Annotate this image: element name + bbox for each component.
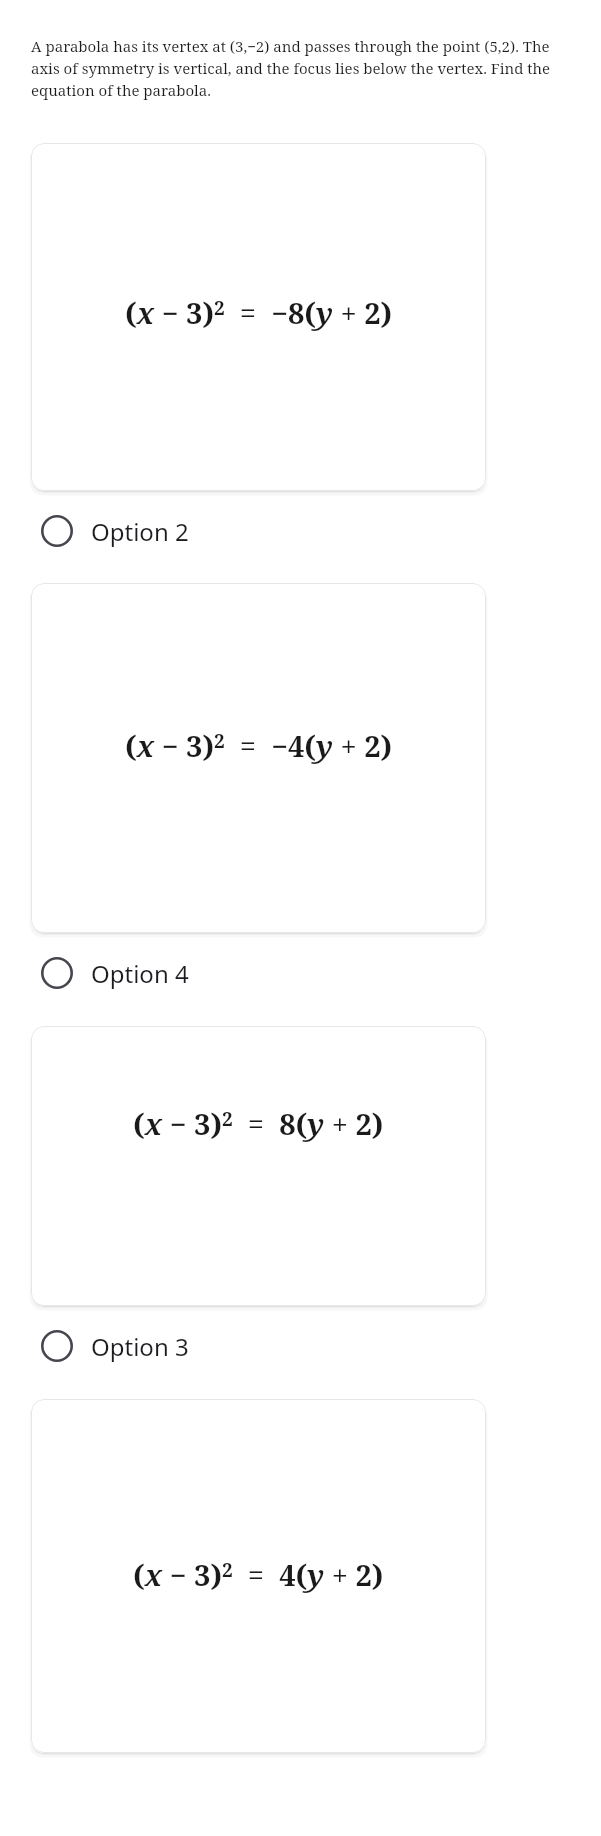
staticText: Option 3 bbox=[91, 1330, 189, 1363]
other: Option 2 bbox=[31, 507, 83, 555]
staticText: (x − 3)2 = 4(y + 2) bbox=[133, 1555, 384, 1594]
staticText: Option 2 bbox=[91, 515, 189, 548]
staticText: (x − 3)2 = −4(y + 2) bbox=[125, 726, 393, 765]
button[interactable]: (x − 3)2 = −8(y + 2) bbox=[31, 143, 486, 491]
button[interactable]: Option 2 bbox=[31, 507, 577, 555]
staticText: Option 4 bbox=[91, 957, 189, 990]
button[interactable]: Option 3 bbox=[31, 1322, 577, 1370]
other: Option 3 bbox=[31, 1322, 83, 1370]
button[interactable]: (x − 3)2 = 4(y + 2) bbox=[31, 1399, 486, 1753]
staticText: A parabola has its vertex at (3,−2) and … bbox=[31, 36, 551, 101]
button[interactable]: (x − 3)2 = −4(y + 2) bbox=[31, 583, 486, 933]
other: Option 4 bbox=[31, 949, 83, 997]
staticText: (x − 3)2 = 8(y + 2) bbox=[133, 1104, 384, 1143]
staticText: (x − 3)2 = −8(y + 2) bbox=[125, 293, 393, 332]
button[interactable]: Option 4 bbox=[31, 949, 577, 997]
button[interactable]: (x − 3)2 = 8(y + 2) bbox=[31, 1026, 486, 1306]
